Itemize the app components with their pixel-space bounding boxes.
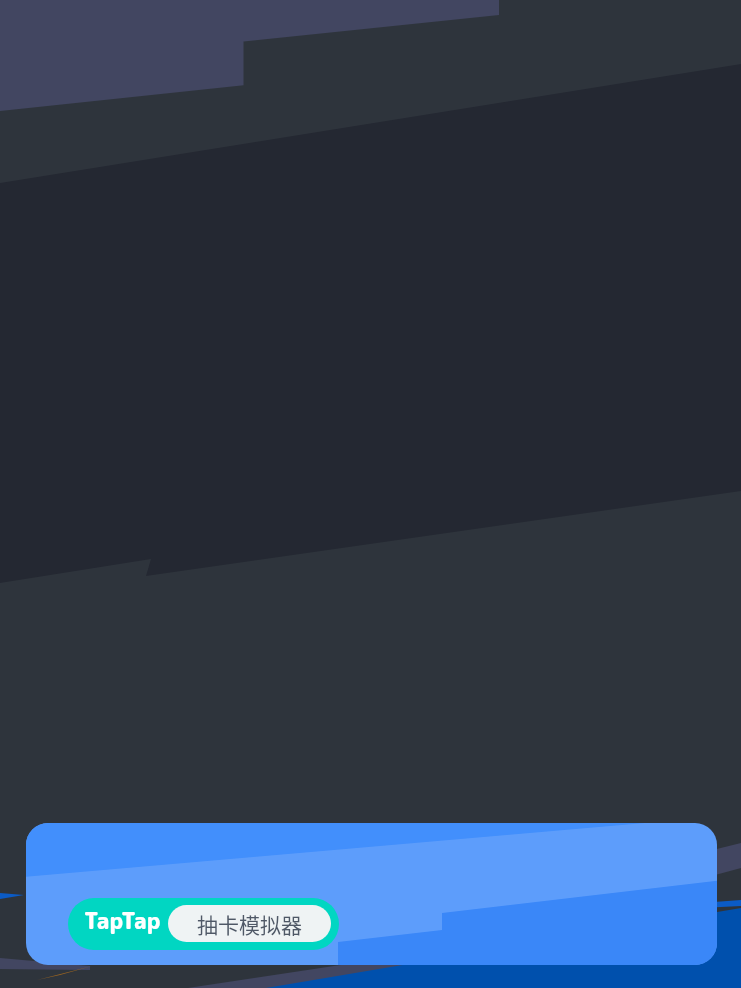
staticText: 抽卡模拟器: [197, 909, 302, 939]
staticText: TapTap: [84, 905, 161, 936]
button[interactable]: TapTap: [68, 898, 339, 950]
